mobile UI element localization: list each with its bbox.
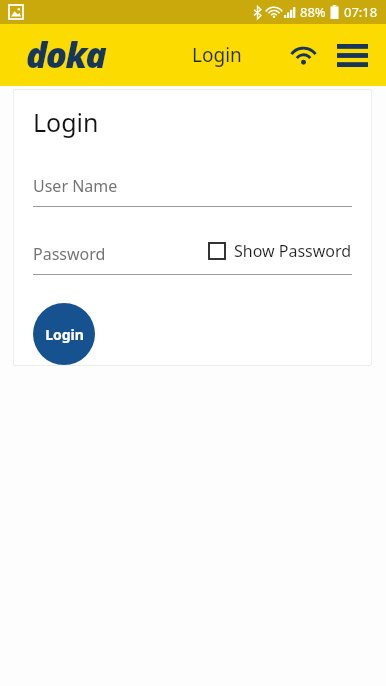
button[interactable]: User Name (33, 175, 352, 207)
staticText: Show Password (234, 240, 352, 262)
button[interactable]: Show Password (209, 240, 352, 262)
staticText: 88% (300, 3, 326, 21)
staticText: Login (45, 325, 84, 344)
button[interactable]: Menu (330, 33, 374, 77)
button[interactable]: Login (33, 303, 95, 365)
button[interactable]: Doka home (26, 31, 106, 79)
staticText: Password (33, 243, 106, 265)
button[interactable]: Password (33, 243, 183, 275)
staticText: Login (192, 42, 242, 68)
staticText: Login (33, 105, 99, 139)
button[interactable]: Connection status (286, 38, 320, 72)
staticText: User Name (33, 175, 118, 197)
staticText: 07:18 (344, 3, 378, 21)
staticText: doka (26, 31, 106, 79)
